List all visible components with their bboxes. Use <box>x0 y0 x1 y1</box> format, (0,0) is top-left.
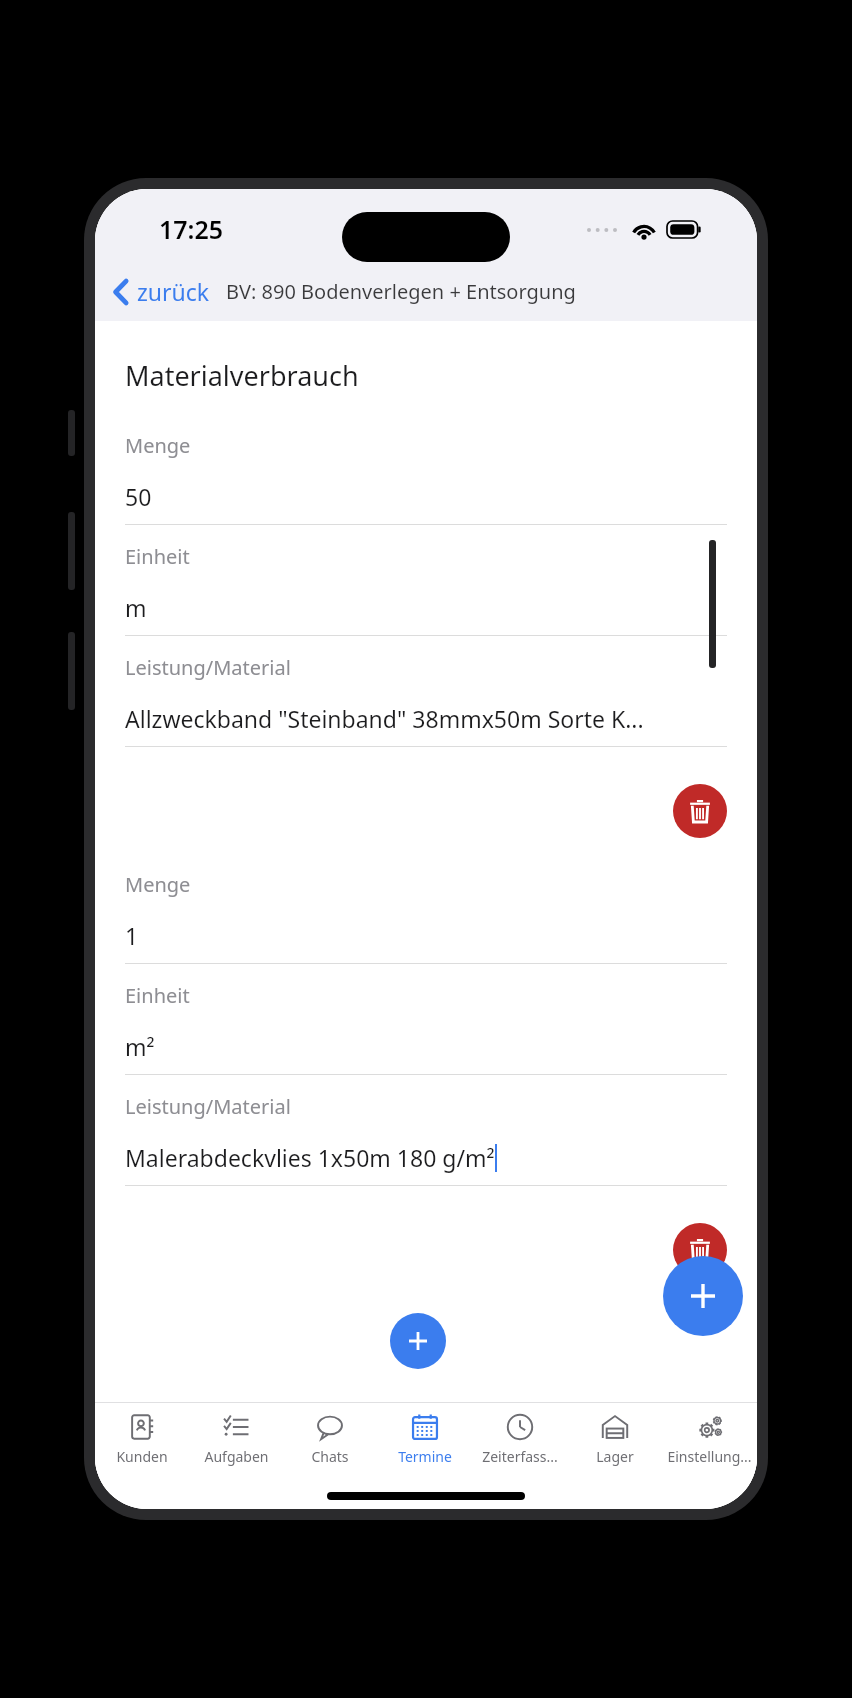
staticText: Leistung/Material <box>125 1093 291 1120</box>
staticText: Einstellung... <box>667 1447 752 1466</box>
button[interactable]: Termine <box>377 1403 472 1475</box>
staticText: Menge <box>125 432 191 459</box>
button[interactable]: Chats <box>283 1403 377 1475</box>
button[interactable]: Zeiterfass... <box>472 1403 567 1475</box>
button[interactable]: Aufgaben <box>189 1403 283 1475</box>
button[interactable]: Lager <box>567 1403 662 1475</box>
staticText: zurück <box>137 276 210 307</box>
staticText: 17:25 <box>159 212 224 246</box>
staticText: Allzweckband "Steinband" 38mmx50m Sorte … <box>125 703 644 734</box>
staticText: Einheit <box>125 982 190 1009</box>
button[interactable]: Löschen <box>673 1223 727 1277</box>
staticText: Lager <box>596 1447 634 1466</box>
staticText: 1 <box>125 920 139 951</box>
staticText: m² <box>125 1031 155 1062</box>
staticText: Chats <box>311 1447 349 1466</box>
staticText: Menge <box>125 871 191 898</box>
staticText: Leistung/Material <box>125 654 291 681</box>
button[interactable]: Löschen <box>673 784 727 838</box>
staticText: BV: 890 Bodenverlegen + Entsorgung <box>226 278 576 305</box>
staticText: Kunden <box>116 1447 168 1466</box>
button[interactable]: zurück <box>107 270 216 313</box>
staticText: Aufgaben <box>204 1447 269 1466</box>
staticText: Einheit <box>125 543 190 570</box>
button[interactable]: Position hinzufügen <box>390 1313 446 1369</box>
button[interactable]: Kunden <box>95 1403 189 1475</box>
staticText: Zeiterfass... <box>482 1447 558 1466</box>
staticText: m <box>125 592 147 623</box>
staticText: Malerabdeckvlies 1x50m 180 g/m² <box>125 1142 495 1173</box>
button[interactable]: Einstellung... <box>662 1403 757 1475</box>
staticText: Termine <box>398 1447 452 1466</box>
button[interactable]: Hinzufügen <box>663 1256 743 1336</box>
staticText: 50 <box>125 481 152 512</box>
staticText: Materialverbrauch <box>125 357 359 394</box>
